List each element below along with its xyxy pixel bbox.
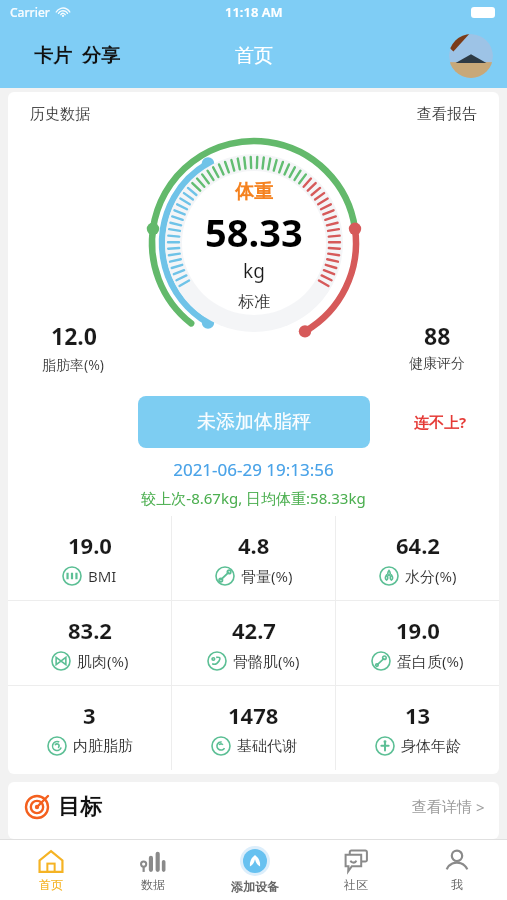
- staticText: 83.2: [68, 615, 112, 645]
- staticText: 卡片: [34, 44, 72, 68]
- staticText: 连不上?: [414, 412, 467, 432]
- button[interactable]: 未添加体脂秤: [138, 396, 370, 448]
- button[interactable]: 分享: [82, 44, 120, 68]
- staticText: 社区: [344, 877, 368, 892]
- button[interactable]: 添加设备: [204, 840, 305, 900]
- staticText: kg: [243, 258, 265, 284]
- staticText: 骨量(%): [241, 566, 293, 586]
- button[interactable]: Profile: [449, 34, 493, 78]
- staticText: 2021-06-29 19:13:56: [8, 458, 499, 481]
- staticText: 骨骼肌(%): [233, 651, 300, 671]
- staticText: 健康评分: [409, 355, 465, 373]
- staticText: 数据: [141, 877, 165, 892]
- staticText: 添加设备: [231, 879, 279, 894]
- staticText: 内脏脂肪: [73, 737, 133, 756]
- button[interactable]: 首页: [0, 840, 102, 900]
- button[interactable]: 我: [406, 840, 507, 900]
- staticText: 未添加体脂秤: [197, 410, 311, 434]
- staticText: 12.0: [51, 320, 97, 351]
- staticText: 首页: [235, 44, 273, 68]
- staticText: 标准: [238, 292, 270, 312]
- staticText: 3: [83, 700, 96, 730]
- button[interactable]: 历史数据: [30, 105, 90, 124]
- staticText: 1478: [228, 700, 279, 730]
- staticText: BMI: [88, 566, 117, 586]
- staticText: 64.2: [396, 530, 440, 560]
- staticText: 查看详情: [412, 798, 472, 817]
- staticText: 较上次-8.67kg, 日均体重:58.33kg: [8, 488, 499, 508]
- button[interactable]: 查看报告: [417, 105, 477, 124]
- staticText: 查看报告: [417, 105, 477, 124]
- staticText: 58.33: [205, 206, 303, 258]
- staticText: 19.0: [68, 530, 112, 560]
- button[interactable]: 64.2: [336, 516, 499, 600]
- staticText: 首页: [39, 877, 63, 892]
- staticText: 蛋白质(%): [397, 651, 464, 671]
- button[interactable]: 4.8: [172, 516, 335, 600]
- staticText: 身体年龄: [401, 737, 461, 756]
- staticText: 肌肉(%): [77, 651, 129, 671]
- staticText: 11:18 AM: [225, 3, 283, 21]
- staticText: 42.7: [232, 615, 276, 645]
- staticText: 我: [451, 877, 463, 892]
- button[interactable]: 连不上?: [414, 412, 467, 432]
- button[interactable]: 数据: [102, 840, 204, 900]
- button[interactable]: 社区: [305, 840, 406, 900]
- button[interactable]: 83.2: [8, 601, 171, 685]
- staticText: 脂肪率(%): [42, 355, 105, 374]
- button[interactable]: 19.0: [8, 516, 171, 600]
- button[interactable]: 卡片: [34, 44, 72, 68]
- staticText: 基础代谢: [237, 737, 297, 756]
- button[interactable]: 13: [336, 686, 499, 770]
- staticText: 13: [405, 700, 431, 730]
- staticText: 水分(%): [405, 566, 457, 586]
- button[interactable]: 19.0: [336, 601, 499, 685]
- button[interactable]: 查看详情: [412, 797, 485, 817]
- staticText: 88: [424, 320, 451, 351]
- staticText: 历史数据: [30, 105, 90, 124]
- button[interactable]: 42.7: [172, 601, 335, 685]
- staticText: >: [476, 797, 485, 817]
- button[interactable]: 3: [8, 686, 171, 770]
- staticText: 目标: [58, 793, 102, 821]
- staticText: 体重: [235, 180, 273, 204]
- button[interactable]: 1478: [172, 686, 335, 770]
- staticText: Carrier: [10, 4, 50, 20]
- staticText: 4.8: [238, 530, 270, 560]
- staticText: 19.0: [396, 615, 440, 645]
- staticText: 分享: [82, 44, 120, 68]
